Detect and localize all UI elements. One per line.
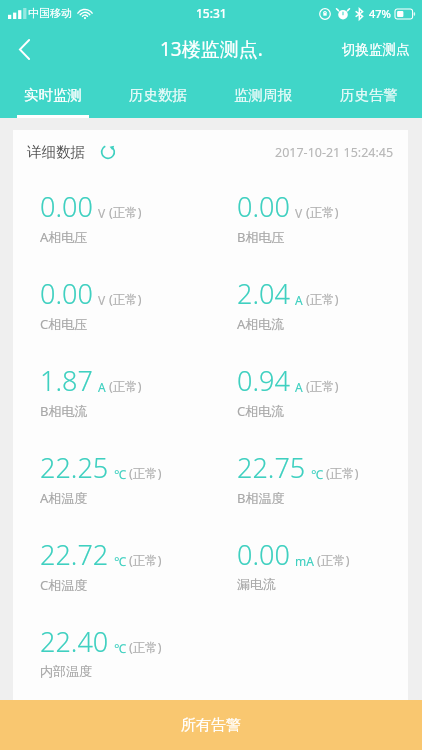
staticText: V [295, 205, 303, 221]
staticText: 2017-10-21 15:24:45 [275, 144, 394, 161]
button[interactable]: 切换监测点 [330, 26, 422, 72]
button[interactable]: 刷新 [97, 141, 119, 163]
staticText: 0.94 [237, 362, 290, 399]
staticText: (正常) [317, 552, 350, 569]
staticText: 监测周报 [234, 86, 292, 104]
staticText: 历史数据 [129, 86, 187, 104]
staticText: 22.40 [40, 623, 109, 660]
staticText: (正常) [306, 291, 339, 308]
staticText: 22.25 [40, 449, 109, 486]
staticText: C相电压 [40, 315, 88, 333]
staticText: ℃ [114, 640, 126, 656]
staticText: 0.00 [40, 275, 93, 312]
button[interactable]: 返回 [0, 26, 48, 72]
staticText: 历史告警 [340, 86, 398, 104]
staticText: A [98, 379, 106, 395]
button[interactable]: 历史数据 [105, 72, 210, 118]
staticText: B相电流 [40, 402, 88, 420]
staticText: 中国移动 [28, 6, 72, 20]
staticText: (正常) [306, 204, 339, 221]
staticText: 47% [369, 6, 391, 21]
staticText: 0.00 [40, 188, 93, 225]
staticText: 详细数据 [27, 143, 85, 161]
staticText: V [98, 292, 106, 308]
staticText: A [295, 292, 303, 308]
staticText: 所有告警 [181, 716, 241, 735]
staticText: ℃ [114, 466, 126, 482]
staticText: (正常) [129, 639, 162, 656]
staticText: C相电流 [237, 402, 285, 420]
staticText: (正常) [109, 291, 142, 308]
staticText: A相电流 [237, 315, 285, 333]
staticText: A相温度 [40, 489, 88, 507]
staticText: 2.04 [237, 275, 290, 312]
staticText: 22.72 [40, 536, 109, 573]
button[interactable]: 实时监测 [0, 72, 105, 118]
staticText: 切换监测点 [342, 41, 410, 58]
staticText: B相电压 [237, 228, 285, 246]
staticText: 0.00 [237, 536, 290, 573]
staticText: B相温度 [237, 489, 285, 507]
button[interactable]: 监测周报 [210, 72, 316, 118]
staticText: A [295, 379, 303, 395]
staticText: V [98, 205, 106, 221]
staticText: (正常) [109, 204, 142, 221]
button[interactable]: 历史告警 [316, 72, 422, 118]
staticText: A相电压 [40, 228, 88, 246]
staticText: 0.00 [237, 188, 290, 225]
staticText: 22.75 [237, 449, 306, 486]
staticText: C相温度 [40, 576, 88, 594]
staticText: (正常) [306, 378, 339, 395]
staticText: 内部温度 [40, 663, 92, 679]
staticText: 1.87 [40, 362, 93, 399]
staticText: (正常) [326, 465, 359, 482]
staticText: ℃ [311, 466, 323, 482]
staticText: 漏电流 [237, 576, 276, 592]
staticText: (正常) [129, 552, 162, 569]
staticText: ℃ [114, 553, 126, 569]
staticText: (正常) [109, 378, 142, 395]
staticText: (正常) [129, 465, 162, 482]
staticText: 13楼监测点. [160, 36, 263, 62]
button[interactable]: 所有告警 [0, 700, 422, 750]
staticText: mA [295, 553, 314, 569]
staticText: 实时监测 [24, 86, 82, 104]
staticText: 15:31 [196, 5, 227, 21]
